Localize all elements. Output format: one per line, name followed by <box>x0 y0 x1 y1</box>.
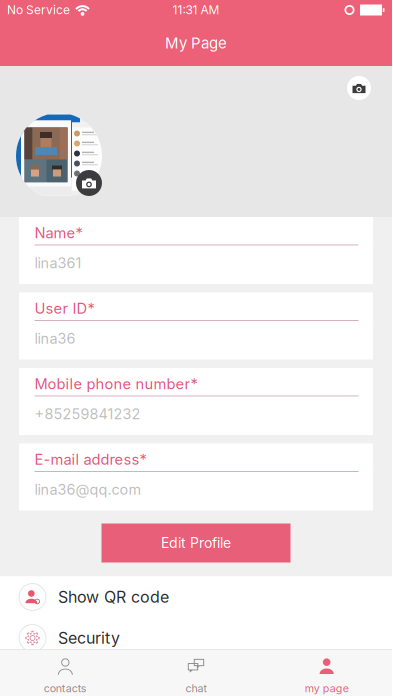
staticText: Notification <box>58 669 145 689</box>
staticText: lina361 <box>34 254 81 272</box>
button[interactable]: Change profile photo <box>344 73 374 103</box>
staticText: chat <box>185 682 206 695</box>
staticText: No Service <box>7 3 70 17</box>
button[interactable]: contacts <box>0 649 131 696</box>
button[interactable]: Edit Profile <box>101 523 290 562</box>
staticText: Edit Profile <box>161 534 231 551</box>
button[interactable]: Security <box>0 617 392 658</box>
staticText: my page <box>305 682 349 695</box>
staticText: My Page <box>165 34 227 52</box>
button[interactable]: Show QR code <box>0 576 392 617</box>
staticText: 11:31 AM <box>172 3 219 17</box>
staticText: +85259841232 <box>34 405 140 423</box>
staticText: Name* <box>34 224 82 242</box>
staticText: lina36@qq.com <box>34 481 141 498</box>
staticText: Show QR code <box>58 587 169 607</box>
staticText: Mobile phone number* <box>34 375 197 393</box>
staticText: lina36 <box>34 330 75 347</box>
staticText: Security <box>58 628 120 648</box>
staticText: contacts <box>44 682 87 695</box>
staticText: E-mail address* <box>34 451 146 468</box>
button[interactable]: my page <box>261 649 392 696</box>
button[interactable]: Notification <box>0 658 392 696</box>
staticText: User ID* <box>34 300 94 317</box>
button[interactable]: chat <box>131 649 261 696</box>
